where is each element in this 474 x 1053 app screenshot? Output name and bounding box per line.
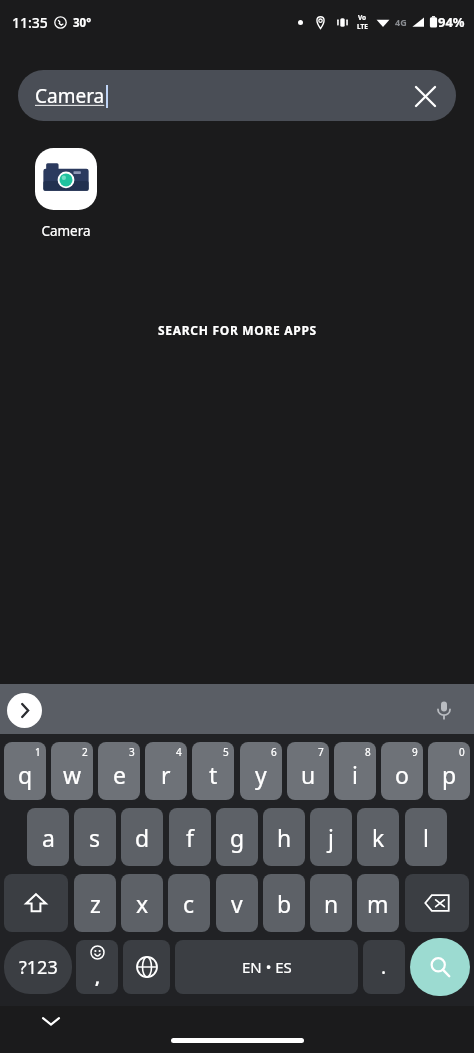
button[interactable]: l (405, 808, 447, 866)
staticText: 1 (35, 745, 41, 759)
staticText: k (372, 822, 385, 853)
button[interactable]: Emoji (76, 940, 118, 994)
button[interactable]: Clear search (408, 79, 442, 113)
staticText: g (230, 822, 245, 853)
button[interactable]: c (168, 874, 210, 932)
button[interactable]: i (334, 742, 376, 800)
staticText: LTE (357, 22, 368, 31)
button[interactable]: q (4, 742, 46, 800)
button[interactable]: e (98, 742, 140, 800)
button[interactable]: ?123 (4, 940, 72, 994)
staticText: 0 (459, 745, 465, 759)
button[interactable]: h (263, 808, 305, 866)
button[interactable]: w (51, 742, 93, 800)
button[interactable]: a (27, 808, 69, 866)
staticText: y (255, 759, 267, 790)
button[interactable]: r (145, 742, 187, 800)
staticText: u (301, 759, 316, 790)
staticText: b (277, 888, 292, 919)
staticText: m (367, 888, 389, 919)
staticText: j (328, 822, 334, 853)
staticText: i (352, 759, 358, 790)
button[interactable]: d (121, 808, 163, 866)
button[interactable]: b (263, 874, 305, 932)
button[interactable]: Voice input (426, 692, 462, 728)
staticText: f (186, 822, 194, 853)
button[interactable]: Hide keyboard (32, 1002, 70, 1040)
button[interactable]: s (74, 808, 116, 866)
button[interactable]: Camera (18, 70, 456, 121)
staticText: p (442, 759, 457, 790)
staticText: a (42, 822, 55, 853)
staticText: 4 (176, 745, 182, 759)
button[interactable]: Shift (4, 874, 68, 932)
button[interactable]: v (216, 874, 258, 932)
button[interactable]: EN • ES (175, 940, 358, 994)
staticText: h (277, 822, 292, 853)
button[interactable]: m (357, 874, 399, 932)
staticText: o (395, 759, 409, 790)
staticText: EN • ES (242, 957, 292, 977)
staticText: x (136, 888, 149, 919)
staticText: s (89, 822, 101, 853)
staticText: 9 (412, 745, 418, 759)
button[interactable]: Search (410, 938, 470, 996)
staticText: e (113, 759, 126, 790)
staticText: 11:35 (12, 13, 48, 32)
staticText: q (18, 759, 33, 790)
staticText: , (95, 966, 100, 989)
staticText: c (183, 888, 195, 919)
staticText: ?123 (19, 955, 58, 980)
staticText: 3 (129, 745, 135, 759)
button[interactable]: x (121, 874, 163, 932)
staticText: 5 (223, 745, 229, 759)
button[interactable]: n (310, 874, 352, 932)
staticText: 2 (82, 745, 88, 759)
button[interactable]: u (287, 742, 329, 800)
staticText: z (90, 888, 101, 919)
button[interactable]: Backspace (405, 874, 469, 932)
button[interactable]: j (310, 808, 352, 866)
staticText: 30° (73, 15, 92, 31)
staticText: 4G (395, 16, 407, 28)
button[interactable]: Expand toolbar (7, 693, 42, 728)
staticText: 8 (365, 745, 371, 759)
button[interactable]: k (357, 808, 399, 866)
button[interactable]: p (428, 742, 470, 800)
button[interactable]: f (169, 808, 211, 866)
staticText: Camera (35, 83, 105, 109)
staticText: r (161, 759, 171, 790)
button[interactable]: Change language (123, 940, 170, 994)
button[interactable]: SEARCH FOR MORE APPS (0, 319, 474, 341)
button[interactable]: t (192, 742, 234, 800)
staticText: Camera (41, 222, 91, 240)
staticText: v (231, 888, 243, 919)
staticText: 6 (271, 745, 277, 759)
staticText: 94% (438, 13, 465, 31)
staticText: t (209, 759, 218, 790)
button[interactable]: . (363, 940, 405, 994)
button[interactable]: z (74, 874, 116, 932)
button[interactable]: y (240, 742, 282, 800)
staticText: w (63, 759, 82, 790)
staticText: l (423, 822, 429, 853)
staticText: SEARCH FOR MORE APPS (158, 322, 317, 338)
button[interactable]: g (216, 808, 258, 866)
button[interactable]: o (381, 742, 423, 800)
staticText: n (324, 888, 339, 919)
staticText: . (381, 954, 387, 980)
button[interactable]: Camera (22, 148, 110, 240)
staticText: d (135, 822, 150, 853)
staticText: 7 (318, 745, 324, 759)
staticText: Vo (358, 13, 367, 22)
